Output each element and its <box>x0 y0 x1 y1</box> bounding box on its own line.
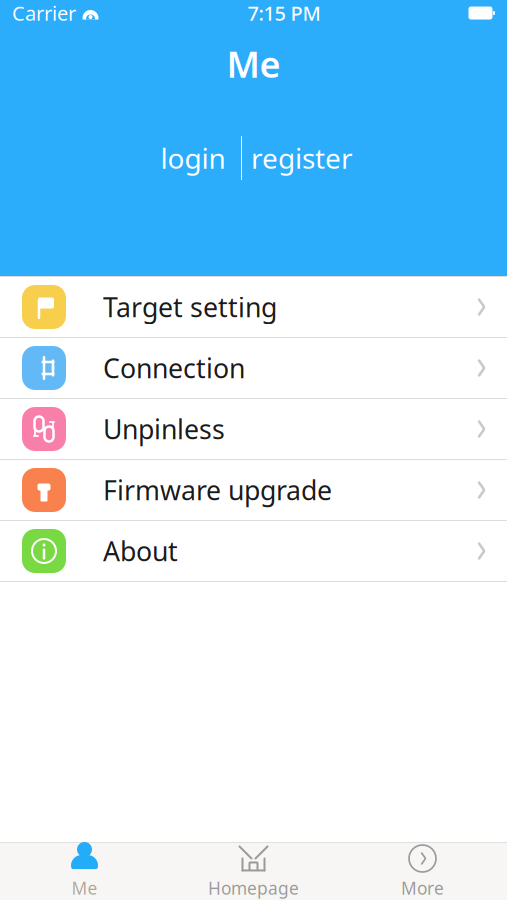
staticText: login <box>160 139 225 177</box>
staticText: Me <box>226 40 280 88</box>
staticText: register <box>251 139 353 177</box>
button[interactable]: About <box>0 521 507 582</box>
staticText: Connection <box>103 350 245 386</box>
staticText: Unpinless <box>103 411 225 447</box>
button[interactable]: Target setting <box>0 277 507 338</box>
button[interactable]: Homepage <box>169 843 338 899</box>
button[interactable]: Unpinless <box>0 399 507 460</box>
button[interactable]: More <box>338 843 507 899</box>
staticText: Carrier <box>12 0 76 26</box>
button[interactable]: Me <box>0 843 169 899</box>
staticText: Target setting <box>103 289 277 325</box>
button[interactable]: login <box>145 136 241 180</box>
staticText: Me <box>71 876 97 899</box>
staticText: 7:15 PM <box>247 0 320 26</box>
button[interactable]: register <box>242 136 362 180</box>
staticText: About <box>103 533 178 569</box>
staticText: Firmware upgrade <box>103 472 332 508</box>
button[interactable]: Firmware upgrade <box>0 460 507 521</box>
button[interactable]: Connection <box>0 338 507 399</box>
staticText: More <box>401 876 444 899</box>
staticText: Homepage <box>208 876 299 899</box>
